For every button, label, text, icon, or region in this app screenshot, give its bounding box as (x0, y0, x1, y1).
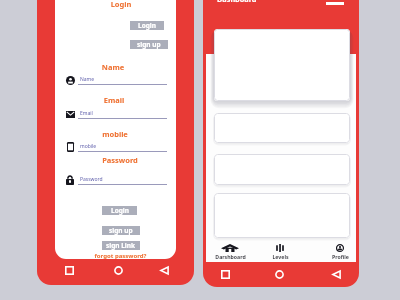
button[interactable] (214, 29, 350, 101)
button[interactable] (214, 113, 350, 143)
staticText: sign up (109, 226, 133, 235)
staticText: Email (80, 110, 93, 117)
staticText: Password (98, 155, 142, 165)
staticText: Darshboard (215, 253, 246, 260)
button[interactable]: Home (272, 267, 286, 281)
staticText: Name (80, 76, 95, 83)
button[interactable]: sign up (130, 40, 168, 49)
button[interactable]: Password (65, 175, 167, 185)
staticText: Login (106, 0, 136, 9)
button[interactable]: Back (157, 263, 171, 277)
staticText: Password (80, 176, 103, 183)
button[interactable]: Levels (258, 243, 302, 260)
staticText: mobile (80, 143, 97, 150)
button[interactable]: Email (65, 109, 167, 119)
staticText: sign Link (106, 241, 136, 250)
staticText: Dashboard (217, 0, 257, 4)
staticText: Name (91, 62, 135, 72)
staticText: Levels (272, 253, 289, 260)
button[interactable]: Home (111, 263, 125, 277)
button[interactable]: Login (130, 21, 164, 30)
button[interactable] (214, 193, 350, 238)
staticText: Profile (332, 253, 349, 260)
staticText: Email (92, 95, 136, 105)
staticText: Login (138, 21, 156, 30)
staticText: mobile (93, 129, 137, 139)
staticText: sign up (137, 40, 161, 49)
button[interactable]: Recent apps (62, 263, 76, 277)
staticText: Login (111, 206, 129, 215)
button[interactable]: sign Link (102, 241, 140, 250)
button[interactable]: Back (329, 267, 343, 281)
button[interactable]: Login (102, 206, 137, 215)
button[interactable]: forgot password? (90, 252, 151, 259)
button[interactable]: Darshboard (208, 243, 252, 260)
button[interactable]: sign up (102, 226, 140, 235)
button[interactable] (214, 154, 350, 185)
button[interactable]: Profile (318, 243, 359, 260)
button[interactable]: Name (65, 75, 167, 85)
button[interactable]: mobile (65, 142, 167, 152)
button[interactable]: Recent apps (218, 267, 232, 281)
